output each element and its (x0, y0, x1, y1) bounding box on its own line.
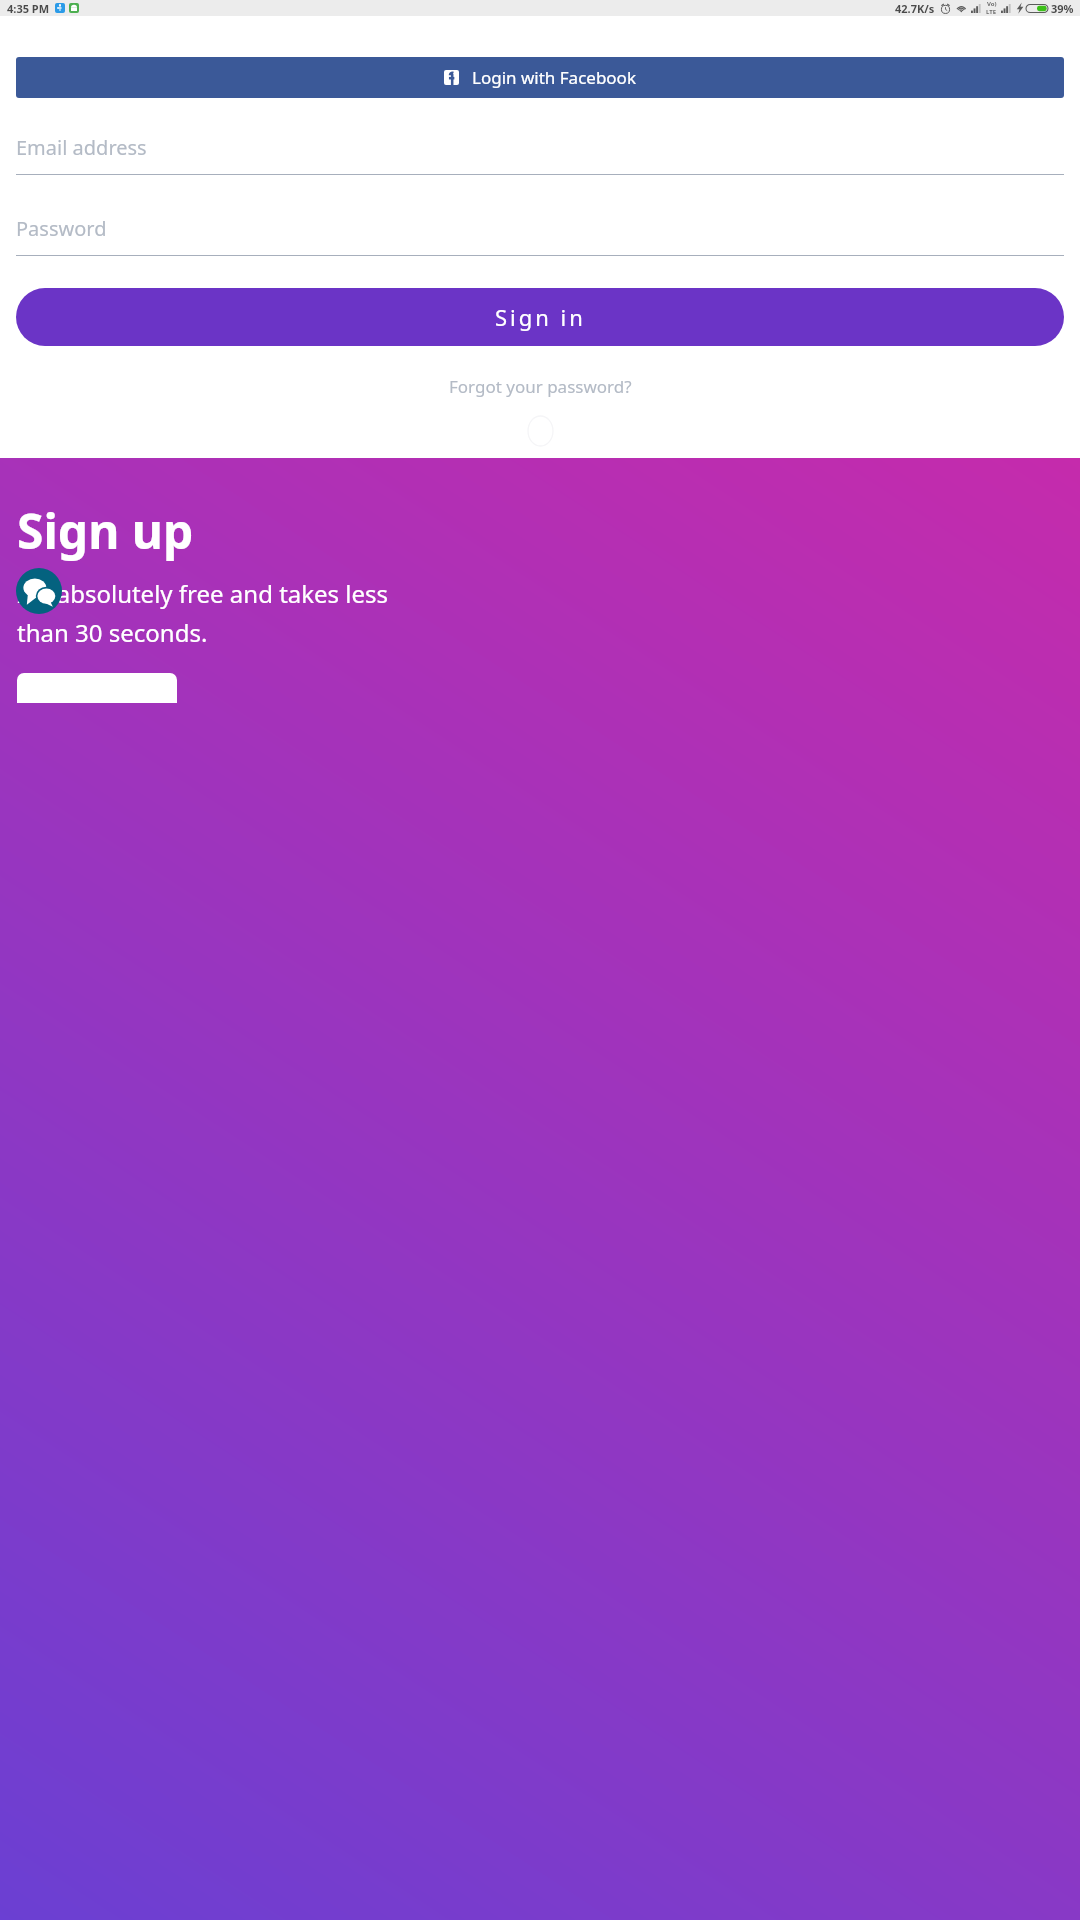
staticText: Vo) (987, 0, 997, 8)
staticText: Password (16, 215, 107, 242)
staticText: Email address (16, 134, 147, 161)
staticText: Sign in (495, 302, 586, 332)
staticText: It's absolutely free and takes less than… (17, 577, 389, 649)
button[interactable]: Chat support (16, 568, 62, 614)
staticText: LTE (986, 8, 997, 16)
staticText: 42.7K/s (895, 1, 935, 16)
button[interactable] (17, 673, 177, 703)
button[interactable]: Password (16, 215, 1064, 256)
button[interactable]: Sign in (16, 288, 1064, 346)
staticText: 4:35 PM (7, 1, 50, 16)
staticText: Forgot your password? (449, 375, 632, 398)
staticText: Sign up (17, 498, 194, 563)
staticText: 39% (1051, 1, 1074, 16)
button[interactable]: Email address (16, 134, 1064, 175)
button[interactable]: Login with Facebook (16, 57, 1064, 98)
button[interactable]: Forgot your password? (16, 375, 1064, 398)
staticText: Login with Facebook (472, 66, 636, 89)
